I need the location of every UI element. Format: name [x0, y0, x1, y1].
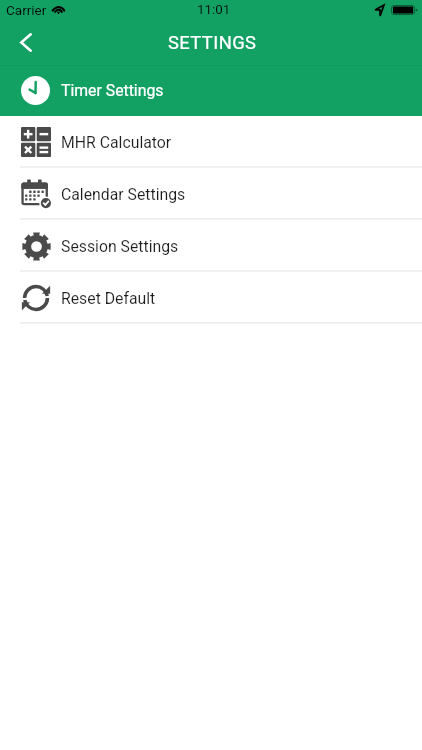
staticText: 11:01 [197, 2, 231, 18]
button[interactable]: MHR Calculator [0, 116, 422, 168]
button[interactable]: Calendar Settings [0, 168, 422, 220]
staticText: Calendar Settings [61, 185, 186, 204]
button[interactable]: Back [0, 20, 46, 65]
staticText: Carrier [6, 2, 47, 18]
staticText: SETTINGS [168, 32, 257, 54]
staticText: MHR Calculator [61, 133, 172, 152]
staticText: Reset Default [61, 289, 156, 308]
staticText: Session Settings [61, 237, 179, 256]
button[interactable]: Timer Settings [0, 65, 422, 116]
staticText: Timer Settings [61, 81, 164, 100]
button[interactable]: Reset Default [0, 272, 422, 324]
button[interactable]: Session Settings [0, 220, 422, 272]
